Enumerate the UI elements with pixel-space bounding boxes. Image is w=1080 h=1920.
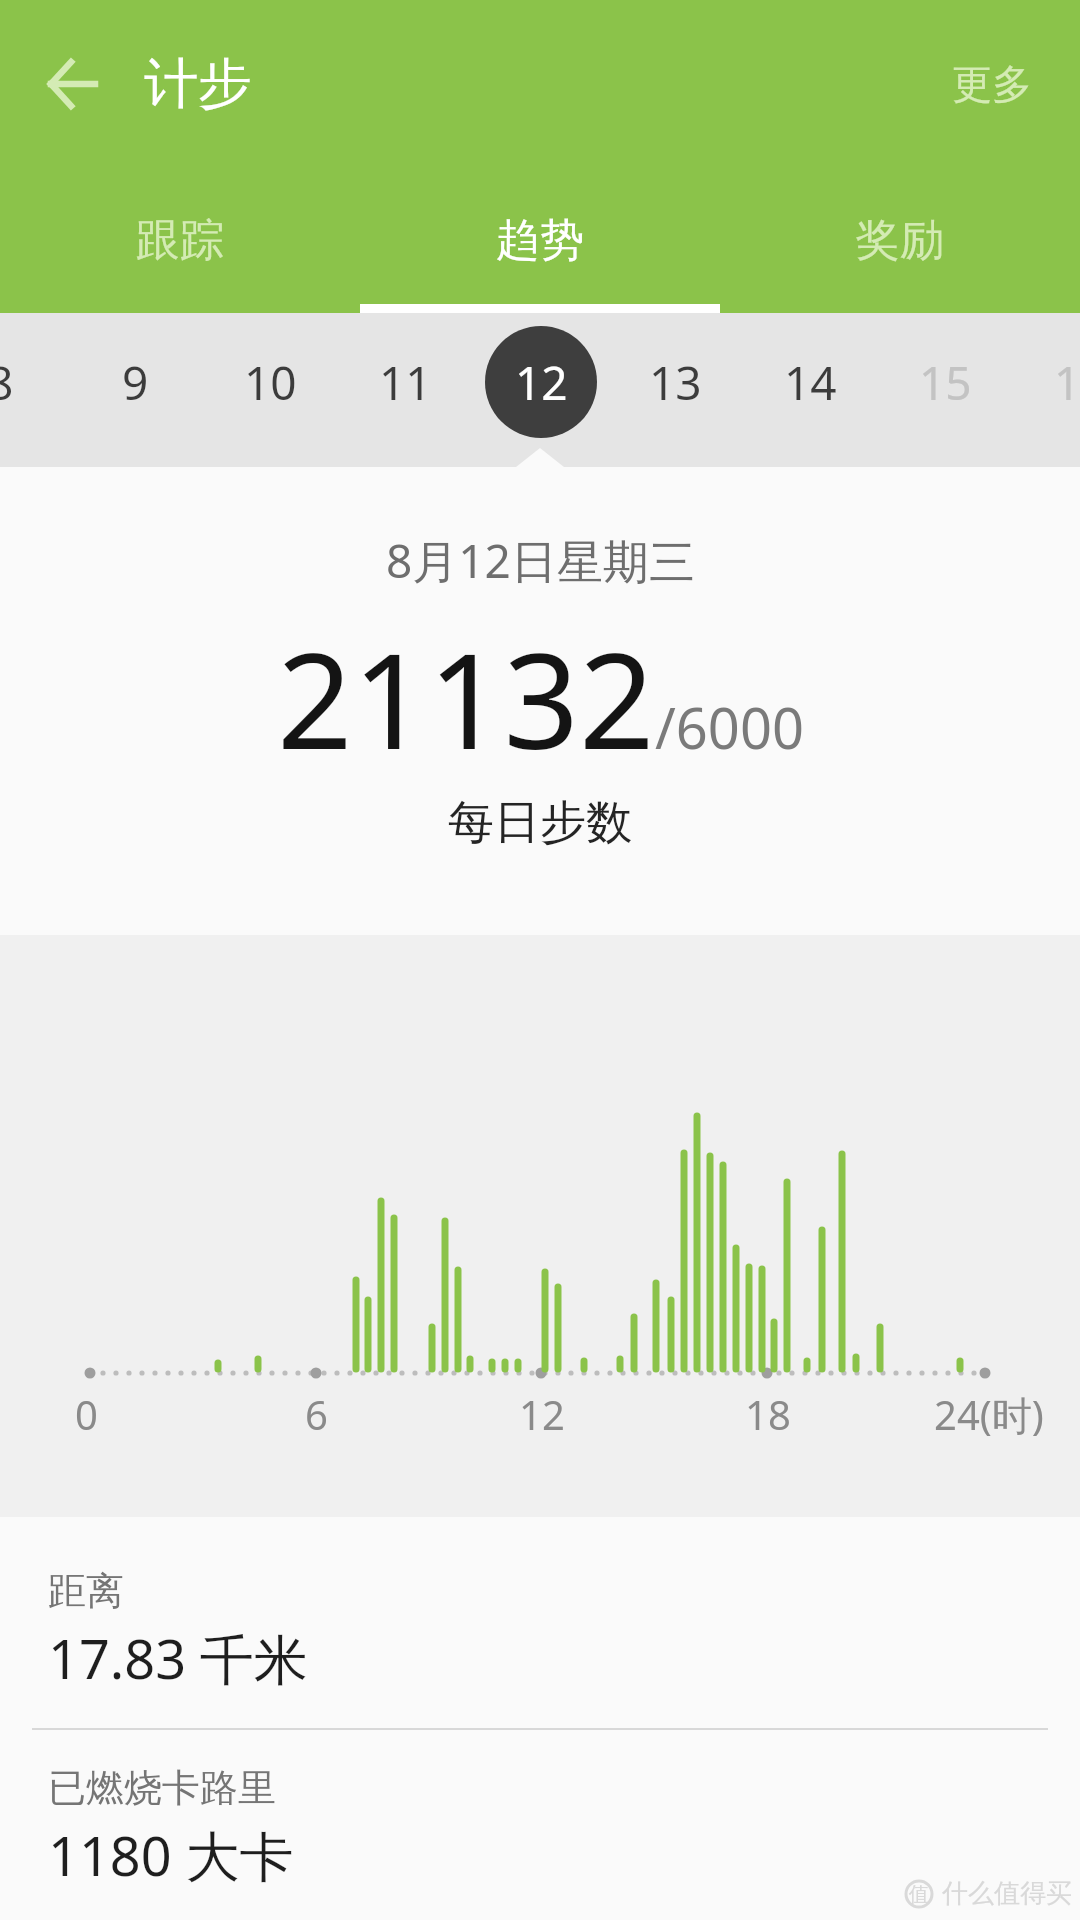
button[interactable]: 9 <box>68 305 203 459</box>
staticText: 跟踪 <box>136 213 224 268</box>
staticText: 奖励 <box>856 213 944 268</box>
staticText: 0 <box>75 1387 98 1441</box>
button[interactable]: 16 <box>1013 305 1080 459</box>
staticText: 1180 大卡 <box>48 1818 294 1892</box>
button[interactable]: 15 <box>878 305 1013 459</box>
staticText: /6000 <box>655 689 804 765</box>
button[interactable]: 趋势 <box>360 168 720 313</box>
button[interactable]: 奖励 <box>720 168 1080 313</box>
staticText: 已燃烧卡路里 <box>48 1764 276 1812</box>
staticText: 14 <box>784 351 837 414</box>
button[interactable]: 13 <box>608 305 743 459</box>
staticText: 11 <box>379 351 432 414</box>
staticText: 15 <box>919 351 972 414</box>
staticText: 每日步数 <box>448 794 632 852</box>
staticText: 24(时) <box>934 1387 1044 1442</box>
staticText: 17.83 千米 <box>48 1621 309 1695</box>
button[interactable]: 12 <box>473 305 608 459</box>
button[interactable]: 11 <box>338 305 473 459</box>
button[interactable]: 已燃烧卡路里 <box>0 1730 1080 1892</box>
staticText: 12 <box>515 351 568 414</box>
staticText: 值 <box>909 1882 929 1907</box>
staticText: 16 <box>1054 351 1080 414</box>
staticText: 10 <box>244 351 297 414</box>
staticText: 什么值得买 <box>942 1877 1072 1910</box>
staticText: 9 <box>122 351 149 414</box>
staticText: 8 <box>0 351 14 414</box>
button[interactable]: 更多 <box>952 59 1080 109</box>
staticText: 18 <box>745 1387 791 1441</box>
staticText: 更多 <box>952 59 1032 109</box>
button[interactable]: 跟踪 <box>0 168 360 313</box>
staticText: 计步 <box>144 50 252 118</box>
button[interactable]: 14 <box>743 305 878 459</box>
button[interactable]: 10 <box>203 305 338 459</box>
staticText: 8月12日星期三 <box>386 529 695 592</box>
staticText: 距离 <box>48 1567 124 1615</box>
staticText: 趋势 <box>496 213 584 268</box>
staticText: 13 <box>649 351 702 414</box>
staticText: 21132 <box>277 608 655 768</box>
staticText: 12 <box>519 1387 565 1441</box>
button[interactable]: 8 <box>0 305 68 459</box>
staticText: 6 <box>305 1387 328 1441</box>
button[interactable]: 距离 <box>0 1517 1080 1695</box>
button[interactable] <box>26 38 118 130</box>
